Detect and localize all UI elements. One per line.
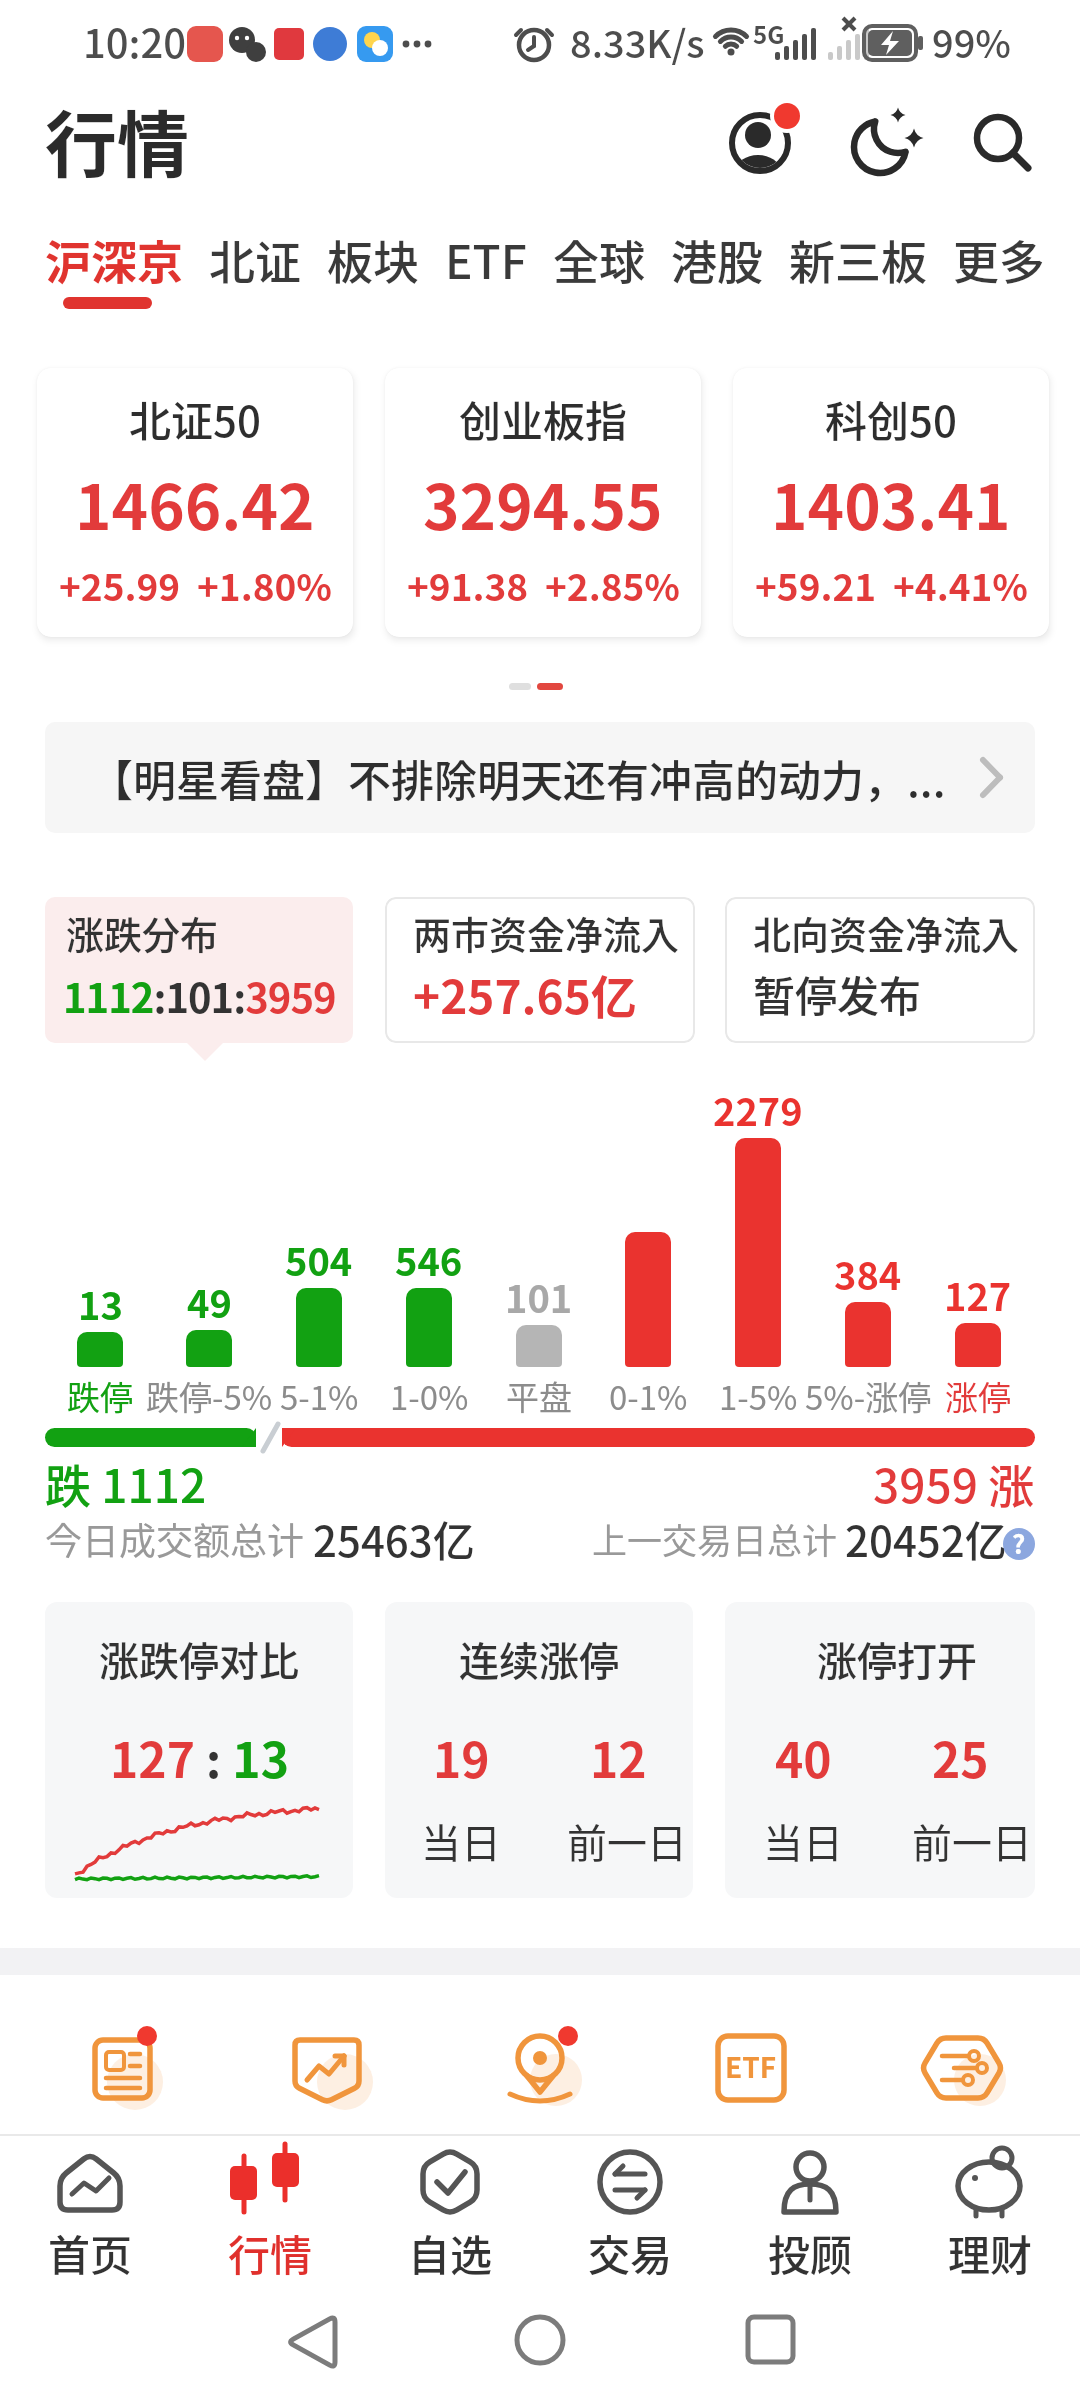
- button[interactable]: 涨跌停对比: [45, 1602, 353, 1898]
- staticText: 3294.55: [423, 458, 663, 548]
- staticText: 创业板指: [459, 388, 628, 449]
- staticText: 当日: [421, 1812, 501, 1870]
- staticText: 5-1%: [280, 1372, 359, 1420]
- button[interactable]: [902, 2008, 1022, 2128]
- staticText: 今日成交额总计: [45, 1512, 304, 1566]
- button[interactable]: [57, 2008, 177, 2128]
- staticText: 8.33K/s: [570, 14, 705, 69]
- button[interactable]: [968, 105, 1040, 181]
- staticText: 546: [395, 1232, 463, 1287]
- staticText: 384: [834, 1246, 902, 1301]
- staticText: 北证50: [129, 388, 261, 449]
- staticText: 跌停-5%: [146, 1372, 273, 1420]
- button[interactable]: 涨跌分布: [45, 897, 353, 1043]
- staticText: 12: [590, 1722, 647, 1792]
- button[interactable]: [460, 2300, 620, 2390]
- button[interactable]: 北证50: [37, 368, 353, 637]
- staticText: 19: [433, 1722, 490, 1792]
- button[interactable]: 两市资金净流入: [385, 897, 695, 1043]
- staticText: 更多: [953, 226, 1045, 293]
- staticText: 板块: [327, 226, 419, 293]
- button[interactable]: 北证: [209, 226, 301, 293]
- button[interactable]: 行情: [180, 2136, 360, 2276]
- staticText: 沪深京: [45, 226, 183, 293]
- staticText: 新三板: [789, 226, 927, 293]
- staticText: 1-0%: [390, 1372, 469, 1420]
- staticText: 理财: [948, 2222, 1033, 2283]
- staticText: 10:20: [83, 12, 187, 70]
- staticText: 全球: [553, 226, 645, 293]
- staticText: 3959 涨: [873, 1450, 1035, 1517]
- staticText: 13: [78, 1276, 123, 1331]
- staticText: 49: [187, 1274, 232, 1329]
- staticText: 101: [505, 1269, 573, 1324]
- staticText: 涨跌分布: [66, 905, 219, 960]
- button[interactable]: ETF: [691, 2008, 811, 2128]
- staticText: 平盘: [506, 1372, 572, 1420]
- staticText: 当日: [763, 1812, 843, 1870]
- button[interactable]: 更多: [953, 226, 1045, 293]
- button[interactable]: [480, 2008, 600, 2128]
- button[interactable]: 沪深京: [45, 226, 183, 293]
- staticText: 北向资金净流入: [753, 905, 1020, 960]
- button[interactable]: 港股: [671, 226, 763, 293]
- staticText: 【明星看盘】不排除明天还有冲高的动力，...: [90, 747, 946, 809]
- button[interactable]: 全球: [553, 226, 645, 293]
- staticText: 行情: [228, 2222, 313, 2283]
- staticText: 5G: [753, 16, 785, 51]
- staticText: 涨停打开: [817, 1630, 977, 1688]
- button[interactable]: [230, 2300, 390, 2390]
- staticText: 港股: [671, 226, 763, 293]
- staticText: 北证: [209, 226, 301, 293]
- staticText: 127 : 13: [110, 1722, 289, 1792]
- staticText: 25463亿: [313, 1508, 475, 1569]
- button[interactable]: [267, 2008, 387, 2128]
- button[interactable]: 【明星看盘】不排除明天还有冲高的动力，...: [45, 722, 1035, 833]
- button[interactable]: 投顾: [720, 2136, 900, 2276]
- staticText: +91.38 +2.85%: [407, 558, 680, 612]
- button[interactable]: 首页: [0, 2136, 180, 2276]
- button[interactable]: 新三板: [789, 226, 927, 293]
- staticText: 连续涨停: [459, 1630, 619, 1688]
- staticText: 5%-涨停: [805, 1372, 932, 1420]
- staticText: 行情: [45, 87, 190, 191]
- staticText: 前一日: [912, 1812, 1032, 1870]
- staticText: 25: [932, 1722, 989, 1792]
- staticText: 自选: [408, 2222, 493, 2283]
- staticText: 跌停: [67, 1372, 133, 1420]
- button[interactable]: 自选: [360, 2136, 540, 2276]
- staticText: 1112:101:3959: [63, 967, 336, 1025]
- button[interactable]: [690, 2300, 850, 2390]
- staticText: 上一交易日总计: [592, 1513, 838, 1564]
- staticText: 1-5%: [719, 1372, 798, 1420]
- button[interactable]: 创业板指: [385, 368, 701, 637]
- button[interactable]: 连续涨停: [385, 1602, 693, 1898]
- staticText: 涨跌停对比: [99, 1630, 299, 1688]
- staticText: 投顾: [768, 2222, 853, 2283]
- staticText: 40: [775, 1722, 832, 1792]
- staticText: 2279: [713, 1082, 803, 1137]
- staticText: 首页: [48, 2222, 133, 2283]
- staticText: 暂停发布: [753, 963, 922, 1024]
- button[interactable]: 科创50: [733, 368, 1049, 637]
- staticText: 99%: [932, 14, 1012, 69]
- staticText: 跌 1112: [45, 1450, 207, 1517]
- staticText: 127: [944, 1267, 1012, 1322]
- staticText: 0-1%: [609, 1372, 688, 1420]
- button[interactable]: 涨停打开: [725, 1602, 1035, 1898]
- button[interactable]: 北向资金净流入: [725, 897, 1035, 1043]
- staticText: 20452亿: [845, 1508, 1007, 1569]
- button[interactable]: [848, 105, 920, 181]
- staticText: 科创50: [825, 388, 957, 449]
- staticText: +25.99 +1.80%: [59, 558, 332, 612]
- button[interactable]: [722, 105, 802, 181]
- staticText: 涨停: [945, 1372, 1011, 1420]
- staticText: +59.21 +4.41%: [755, 558, 1028, 612]
- button[interactable]: 板块: [327, 226, 419, 293]
- staticText: 两市资金净流入: [413, 905, 680, 960]
- staticText: 504: [285, 1232, 353, 1287]
- staticText: ETF: [725, 2046, 777, 2087]
- button[interactable]: 理财: [900, 2136, 1080, 2276]
- button[interactable]: 交易: [540, 2136, 720, 2276]
- button[interactable]: ETF: [445, 226, 527, 293]
